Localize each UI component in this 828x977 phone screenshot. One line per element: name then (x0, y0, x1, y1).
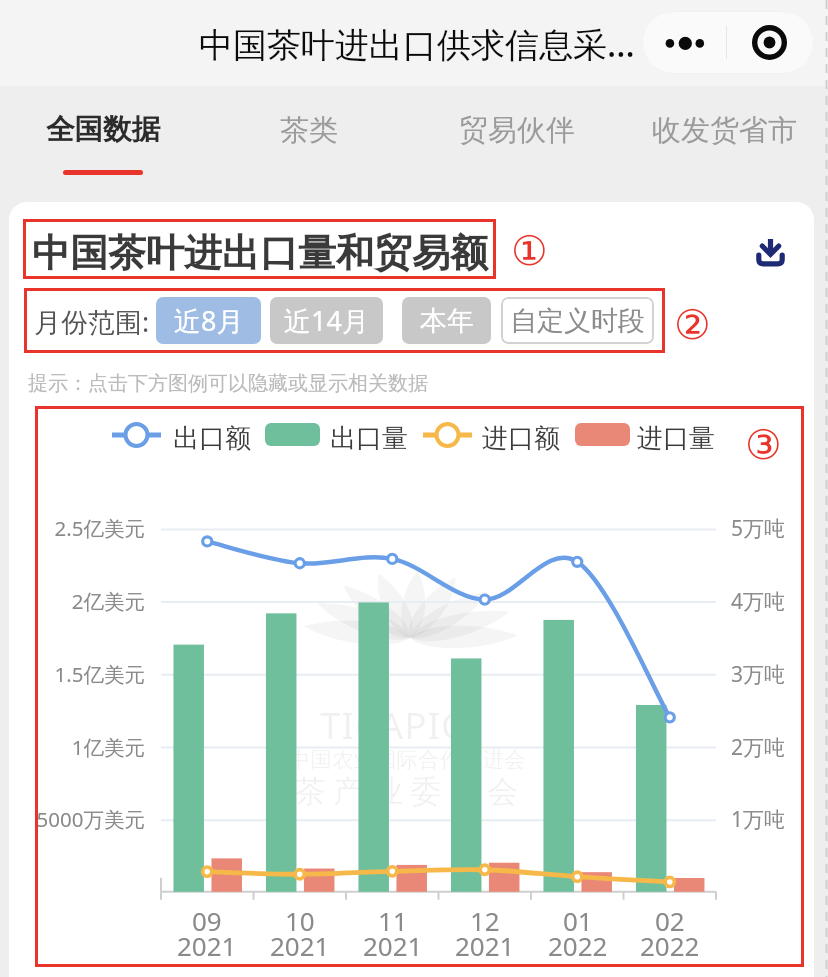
staticText: TICAPIC (320, 699, 466, 749)
staticText: 提示：点击下方图例可以隐藏或显示相关数据 (28, 371, 428, 396)
staticText: 09 (192, 903, 222, 938)
staticText: 近14月 (284, 302, 369, 339)
button[interactable]: 进口额 (423, 413, 572, 457)
staticText: 1.5亿美元 (54, 660, 145, 688)
staticText: 本年 (420, 304, 474, 338)
button[interactable]: Close mini program (728, 11, 814, 74)
staticText: ② (674, 301, 711, 349)
button[interactable]: 自定义时段 (501, 297, 654, 344)
staticText: 1万吨 (731, 805, 786, 834)
staticText: ① (511, 227, 548, 275)
staticText: 4万吨 (731, 587, 786, 616)
staticText: 中国茶叶进出口量和贸易额 (32, 229, 488, 277)
staticText: 10 (285, 903, 315, 938)
staticText: 进口额 (482, 422, 560, 455)
button[interactable]: 近8月 (156, 297, 261, 344)
staticText: 贸易伙伴 (459, 112, 575, 149)
staticText: 收发货省市 (652, 112, 797, 149)
staticText: 5万吨 (731, 514, 786, 543)
staticText: 自定义时段 (510, 304, 645, 338)
staticText: 5000万美元 (36, 805, 145, 833)
button[interactable]: 收发货省市 (624, 86, 824, 202)
staticText: 01 (563, 903, 593, 938)
button[interactable]: 本年 (402, 297, 491, 344)
button[interactable]: 茶类 (209, 86, 409, 202)
staticText: 02 (655, 903, 685, 938)
button[interactable]: 全国数据 (3, 86, 203, 202)
staticText: 近8月 (174, 302, 244, 339)
button[interactable]: 近14月 (270, 297, 383, 344)
staticText: 中国茶叶进出口供求信息采... (199, 21, 635, 67)
staticText: 2.5亿美元 (54, 514, 145, 542)
staticText: 11 (378, 903, 408, 938)
staticText: 全国数据 (46, 112, 160, 148)
staticText: 茶产业委员会 (291, 772, 522, 811)
button[interactable]: 出口量 (265, 413, 415, 457)
staticText: 2021 (363, 928, 423, 963)
button[interactable]: More options (642, 11, 727, 74)
staticText: 2万吨 (731, 733, 786, 762)
staticText: 出口额 (173, 422, 251, 455)
button[interactable]: 进口量 (575, 413, 722, 457)
staticText: 月份范围: (34, 303, 150, 340)
staticText: 2021 (177, 928, 237, 963)
staticText: 出口量 (330, 422, 408, 455)
staticText: 3万吨 (731, 660, 786, 689)
staticText: 2021 (270, 928, 330, 963)
button[interactable]: 贸易伙伴 (417, 86, 617, 202)
staticText: 2022 (640, 928, 700, 963)
staticText: 茶类 (280, 112, 338, 149)
staticText: 进口量 (637, 422, 715, 455)
staticText: 1亿美元 (71, 733, 145, 761)
staticText: 2022 (548, 928, 608, 963)
button[interactable]: 出口额 (112, 413, 263, 457)
staticText: 12 (470, 903, 500, 938)
staticText: 2021 (455, 928, 515, 963)
staticText: 中国农业国际合作促进会 (289, 746, 526, 773)
staticText: ③ (745, 421, 782, 469)
button[interactable]: Download data (753, 234, 789, 270)
staticText: 2亿美元 (71, 587, 145, 615)
